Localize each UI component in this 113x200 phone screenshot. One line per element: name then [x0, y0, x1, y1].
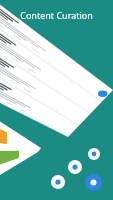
button[interactable]: Add — [85, 174, 102, 191]
button[interactable]: Favourite — [88, 148, 100, 160]
button[interactable]: Music — [51, 175, 65, 189]
button[interactable]: Photos — [68, 160, 82, 174]
staticText: Content Curation — [20, 9, 93, 21]
